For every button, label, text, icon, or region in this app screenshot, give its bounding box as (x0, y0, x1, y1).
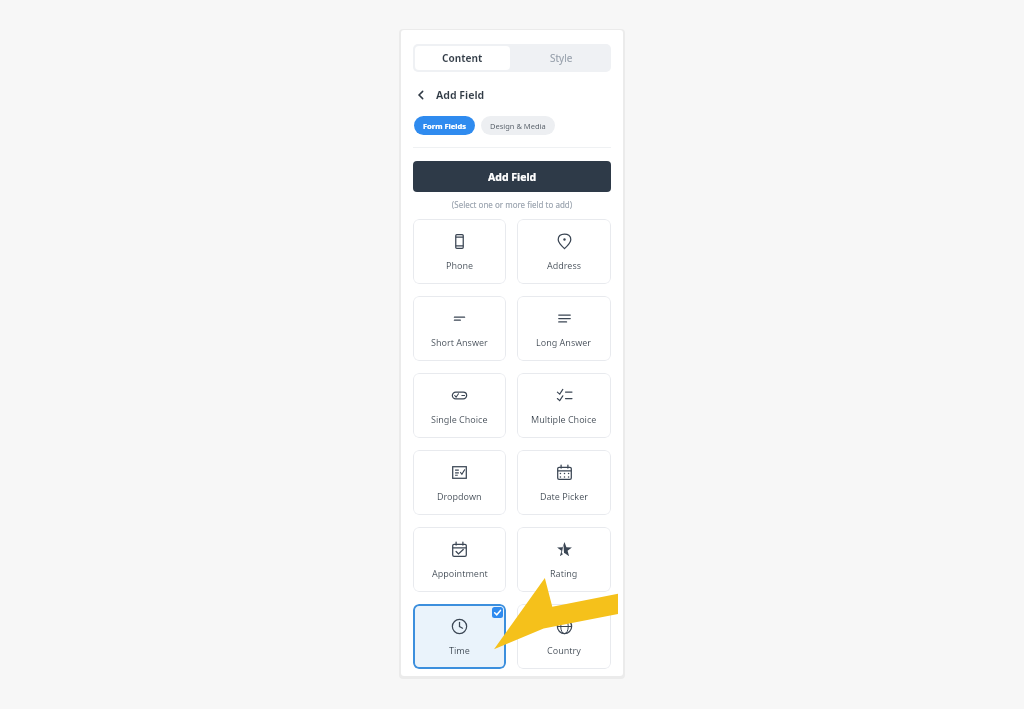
staticText: Address (547, 259, 582, 271)
button[interactable]: Single Choice (413, 373, 506, 438)
button[interactable]: Date Picker (517, 450, 611, 515)
button[interactable]: Rating (517, 527, 611, 592)
button[interactable]: Long Answer (517, 296, 611, 361)
button[interactable]: Content (415, 46, 510, 70)
button[interactable]: Multiple Choice (517, 373, 611, 438)
button[interactable]: Add Field (413, 161, 611, 192)
staticText: Rating (550, 567, 578, 579)
staticText: Appointment (432, 567, 488, 579)
staticText: Country (547, 644, 581, 656)
button[interactable]: Back (414, 86, 610, 104)
button[interactable]: Design & Media (481, 116, 555, 135)
other: Back (414, 88, 428, 102)
staticText: Short Answer (431, 336, 488, 348)
staticText: Add Field (488, 170, 537, 184)
button[interactable]: Dropdown (413, 450, 506, 515)
staticText: Design & Media (490, 121, 546, 131)
staticText: Style (550, 51, 573, 65)
button[interactable]: Style (512, 44, 611, 72)
staticText: Dropdown (437, 490, 482, 502)
staticText: Time (449, 644, 470, 656)
button[interactable]: Time (413, 604, 506, 669)
staticText: Long Answer (536, 336, 592, 348)
button[interactable]: Short Answer (413, 296, 506, 361)
staticText: Multiple Choice (531, 413, 597, 425)
button[interactable]: Country (517, 604, 611, 669)
staticText: Single Choice (431, 413, 488, 425)
staticText: Add Field (436, 88, 485, 102)
button[interactable]: Phone (413, 219, 506, 284)
button[interactable]: Appointment (413, 527, 506, 592)
staticText: (Select one or more field to add) (401, 199, 623, 210)
staticText: Form Fields (423, 121, 466, 131)
staticText: Phone (446, 259, 474, 271)
button[interactable]: Address (517, 219, 611, 284)
staticText: Date Picker (540, 490, 588, 502)
button[interactable]: Form Fields (414, 116, 475, 135)
staticText: Content (442, 51, 483, 65)
